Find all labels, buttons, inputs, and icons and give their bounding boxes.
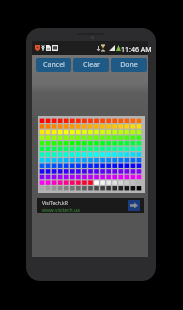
staticText: 11:46 AM (121, 45, 152, 55)
button[interactable]: Clear (73, 58, 109, 72)
staticText: VisiTech.kR (42, 200, 68, 207)
button[interactable]: Cancel (36, 58, 71, 72)
staticText: www.visitech.ua (42, 207, 80, 214)
button[interactable]: Done (111, 58, 147, 72)
staticText: Clear (83, 60, 100, 70)
button[interactable]: Go (128, 200, 140, 211)
staticText: Cancel (43, 60, 65, 70)
staticText: Done (120, 60, 138, 70)
